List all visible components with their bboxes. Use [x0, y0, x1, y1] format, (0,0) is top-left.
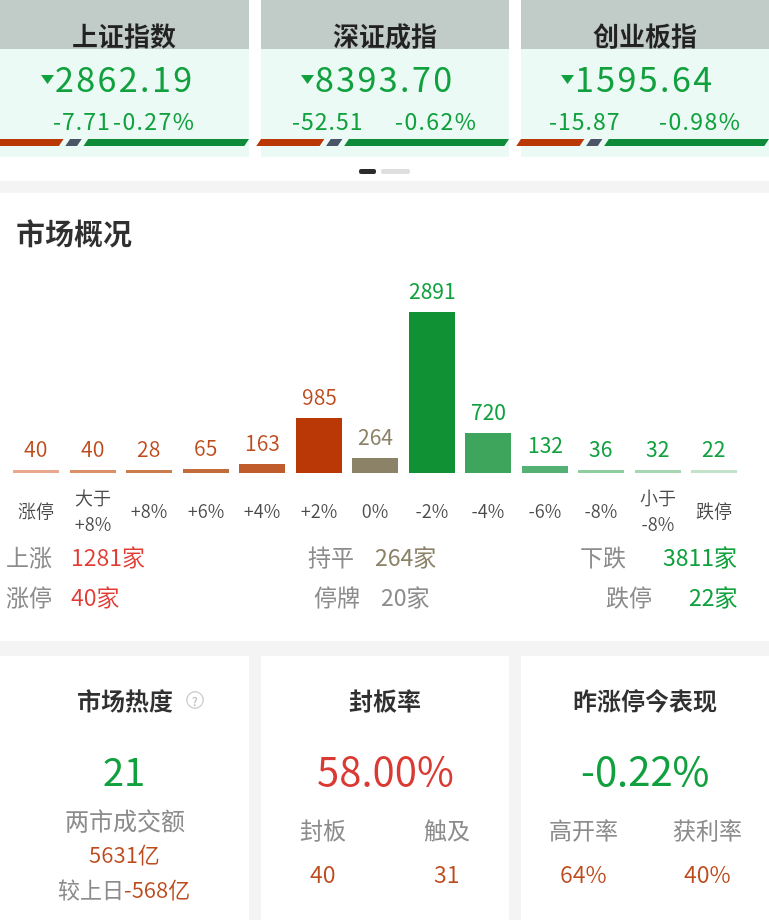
staticText: 5631亿: [89, 837, 160, 869]
staticText: +2%: [296, 497, 342, 523]
staticText: +8%: [126, 497, 172, 523]
staticText: -7.71: [53, 103, 111, 136]
staticText: 封板率: [349, 682, 421, 717]
staticText: 两市成交额: [65, 802, 185, 837]
staticText: 31: [434, 856, 460, 889]
staticText: 36: [589, 433, 613, 463]
staticText: -8%: [635, 510, 681, 536]
staticText: 获利率: [673, 812, 742, 845]
staticText: 大于: [70, 484, 116, 510]
staticText: 40家: [71, 579, 120, 612]
staticText: 40: [24, 433, 48, 463]
staticText: 涨停: [6, 579, 52, 612]
staticText: 2862.19: [55, 53, 195, 102]
staticText: 市场热度: [77, 682, 173, 717]
button[interactable]: 上证指数: [0, 0, 249, 157]
staticText: 985: [302, 381, 337, 411]
staticText: -0.22%: [581, 740, 710, 798]
button[interactable]: [359, 169, 376, 174]
staticText: 64%: [560, 856, 607, 889]
staticText: 3811家: [663, 539, 738, 572]
button[interactable]: 昨涨停今表现: [521, 656, 769, 920]
staticText: -15.87: [549, 103, 621, 136]
staticText: 40: [310, 856, 336, 889]
staticText: 22家: [689, 579, 738, 612]
staticText: 创业板指: [593, 16, 698, 54]
staticText: 高开率: [549, 812, 618, 845]
staticText: 20家: [381, 579, 430, 612]
staticText: +8%: [70, 510, 116, 536]
staticText: 持平: [308, 539, 354, 572]
staticText: 上证指数: [72, 16, 177, 54]
staticText: 市场概况: [16, 211, 133, 253]
staticText: 21: [103, 742, 146, 797]
staticText: 深证成指: [333, 16, 438, 54]
staticText: 40%: [684, 856, 731, 889]
staticText: 28: [137, 433, 161, 463]
staticText: 0%: [352, 497, 398, 523]
button[interactable]: 封板率: [261, 656, 509, 920]
button[interactable]: [381, 169, 410, 174]
staticText: ?: [192, 692, 198, 709]
button[interactable]: 创业板指: [521, 0, 769, 157]
staticText: 昨涨停今表现: [573, 682, 717, 717]
staticText: +6%: [183, 497, 229, 523]
staticText: -0.98%: [659, 103, 742, 136]
staticText: 58.00%: [317, 740, 454, 798]
staticText: 22: [702, 433, 726, 463]
staticText: 较上日-568亿: [58, 872, 191, 904]
staticText: -0.62%: [395, 103, 478, 136]
staticText: 163: [245, 427, 280, 457]
staticText: -6%: [522, 497, 568, 523]
staticText: 1595.64: [575, 53, 715, 102]
staticText: -4%: [465, 497, 511, 523]
staticText: 8393.70: [315, 53, 455, 102]
staticText: 264家: [375, 539, 437, 572]
staticText: 上涨: [6, 539, 52, 572]
staticText: -2%: [409, 497, 455, 523]
staticText: 40: [81, 433, 105, 463]
staticText: +4%: [239, 497, 285, 523]
staticText: -0.27%: [113, 103, 196, 136]
staticText: -8%: [578, 497, 624, 523]
button[interactable]: 深证成指: [261, 0, 509, 157]
staticText: 下跌: [580, 539, 626, 572]
staticText: 2891: [409, 275, 455, 305]
staticText: 停牌: [314, 579, 360, 612]
staticText: -52.51: [292, 103, 364, 136]
staticText: 132: [528, 429, 563, 459]
staticText: 跌停: [606, 579, 652, 612]
staticText: 封板: [300, 812, 346, 845]
staticText: 触及: [424, 812, 470, 845]
staticText: 涨停: [13, 497, 59, 523]
staticText: 小于: [635, 484, 681, 510]
staticText: 跌停: [691, 497, 737, 523]
staticText: 1281家: [71, 539, 146, 572]
button[interactable]: 市场热度: [0, 656, 249, 920]
staticText: 65: [194, 432, 218, 462]
staticText: 32: [646, 433, 670, 463]
staticText: 264: [358, 421, 393, 451]
staticText: 720: [471, 396, 506, 426]
